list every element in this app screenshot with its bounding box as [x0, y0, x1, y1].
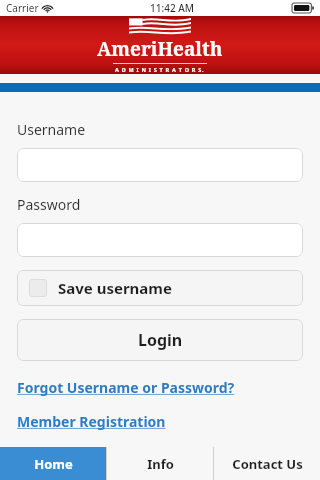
staticText: Member Registration: [17, 412, 166, 431]
staticText: Username: [17, 120, 86, 139]
staticText: Password: [17, 195, 81, 214]
button[interactable]: Member Registration: [17, 412, 166, 431]
staticText: Info: [147, 455, 174, 473]
staticText: Carrier: [6, 1, 39, 15]
button[interactable]: [17, 148, 303, 182]
staticText: Save username: [58, 278, 172, 298]
staticText: AmeriHealth: [97, 36, 223, 62]
button[interactable]: Home: [0, 447, 106, 480]
staticText: Forgot Username or Password?: [17, 378, 235, 397]
button[interactable]: Save username: [17, 270, 303, 306]
button[interactable]: Forgot Username or Password?: [17, 378, 235, 397]
staticText: Home: [34, 455, 73, 473]
button[interactable]: [17, 223, 303, 257]
staticText: Login: [138, 329, 183, 351]
button[interactable]: Login: [17, 319, 303, 361]
button[interactable]: Contact Us: [214, 447, 320, 480]
button[interactable]: Info: [107, 447, 213, 480]
staticText: A D M I N I S T R A T O R S.: [115, 66, 205, 73]
staticText: 11:42 AM: [150, 1, 194, 15]
staticText: Contact Us: [232, 455, 303, 473]
